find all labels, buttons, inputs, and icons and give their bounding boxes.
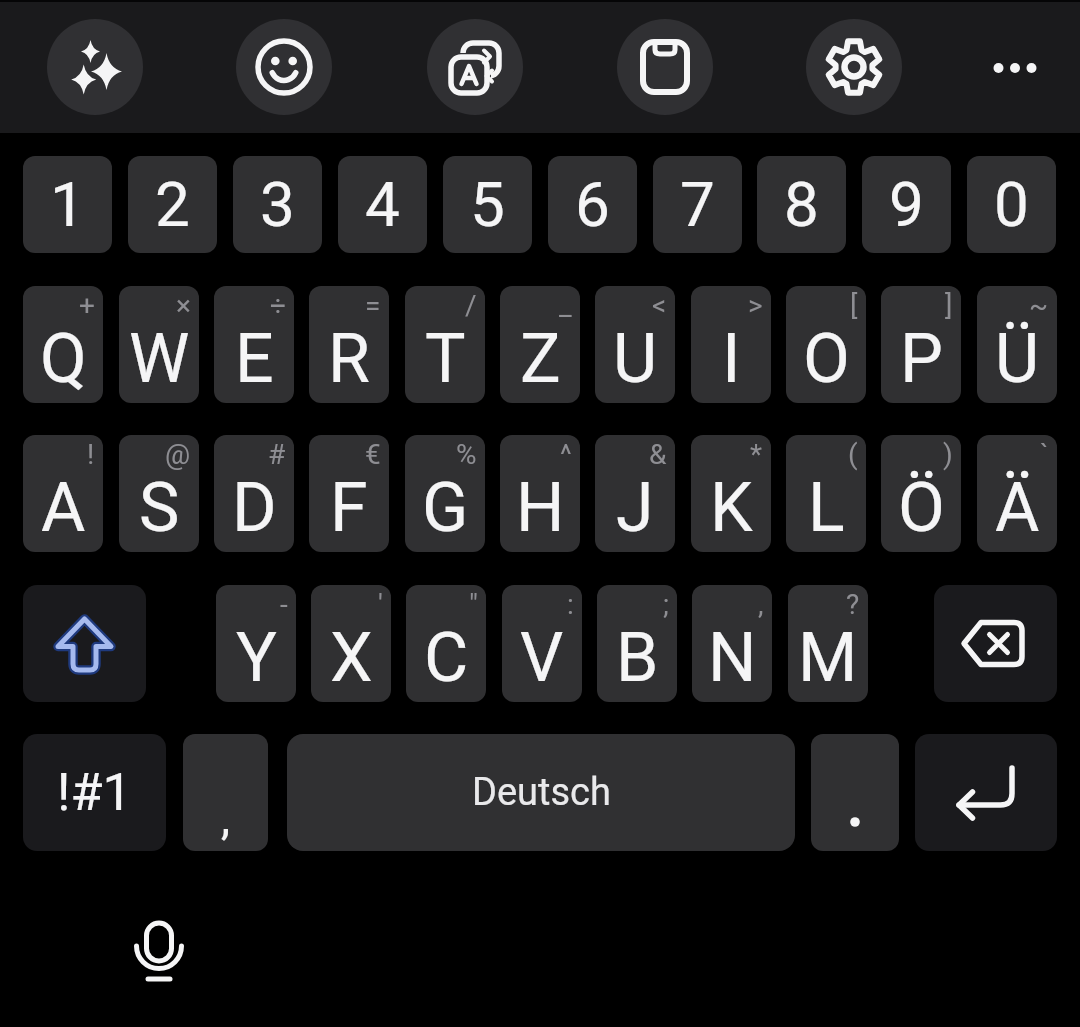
staticText: *	[750, 438, 763, 471]
staticText: ~	[1029, 289, 1049, 322]
button[interactable]	[236, 19, 332, 115]
button[interactable]: "	[406, 585, 486, 702]
button[interactable]: ?	[788, 585, 868, 702]
button[interactable]: [	[786, 286, 866, 403]
button[interactable]: 6	[548, 156, 637, 253]
staticText: :	[567, 588, 574, 621]
staticText: =	[365, 289, 381, 322]
staticText: +	[79, 289, 95, 322]
staticText: 1	[50, 168, 85, 241]
button[interactable]: 9	[862, 156, 951, 253]
staticText: U	[613, 319, 658, 399]
staticText: ×	[176, 289, 191, 322]
button[interactable]: ÷	[214, 286, 294, 403]
staticText: 2	[155, 168, 190, 241]
button[interactable]: €	[309, 435, 389, 552]
staticText: <	[652, 289, 667, 322]
button[interactable]	[811, 734, 899, 851]
button[interactable]	[617, 19, 713, 115]
button[interactable]: 8	[757, 156, 846, 253]
button[interactable]: :	[502, 585, 582, 702]
staticText: @	[165, 438, 191, 471]
staticText: B	[616, 618, 659, 698]
staticText: -	[280, 588, 288, 621]
staticText: S	[139, 468, 180, 548]
staticText: I	[722, 319, 741, 399]
staticText: K	[710, 468, 753, 548]
staticText: 7	[680, 168, 715, 241]
button[interactable]: 1	[23, 156, 112, 253]
staticText: %	[456, 438, 477, 471]
staticText: Ä	[995, 468, 1040, 548]
button[interactable]: /	[405, 286, 485, 403]
staticText: Z	[520, 319, 561, 399]
button[interactable]: '	[311, 585, 391, 702]
button[interactable]: +	[23, 286, 103, 403]
button[interactable]: ]	[881, 286, 961, 403]
staticText: !#1	[57, 762, 132, 823]
staticText: ,	[221, 791, 231, 845]
staticText: ]	[945, 289, 953, 322]
button[interactable]: 7	[653, 156, 742, 253]
button[interactable]	[47, 19, 143, 115]
staticText: ?	[846, 588, 860, 621]
staticText: X	[330, 618, 373, 698]
button[interactable]: 5	[443, 156, 532, 253]
staticText: V	[520, 618, 564, 698]
staticText: H	[516, 468, 565, 548]
button[interactable]: ,	[692, 585, 772, 702]
button[interactable]: !	[23, 435, 103, 552]
button[interactable]: ^	[500, 435, 580, 552]
staticText: >	[748, 289, 763, 322]
button[interactable]: ,	[183, 734, 268, 851]
button[interactable]: =	[309, 286, 389, 403]
staticText: F	[330, 468, 368, 548]
button[interactable]: (	[786, 435, 866, 552]
button[interactable]: ~	[977, 286, 1057, 403]
staticText: 5	[470, 168, 505, 241]
staticText: &	[649, 438, 667, 471]
button[interactable]: @	[119, 435, 199, 552]
button[interactable]: Deutsch	[287, 734, 795, 851]
staticText: Deutsch	[472, 770, 611, 815]
button[interactable]: #	[214, 435, 294, 552]
staticText: "	[469, 588, 478, 621]
button[interactable]: >	[691, 286, 771, 403]
button[interactable]	[915, 734, 1057, 851]
staticText: !	[87, 438, 95, 471]
staticText: M	[798, 618, 858, 698]
button[interactable]: _	[500, 286, 580, 403]
button[interactable]: %	[405, 435, 485, 552]
staticText: D	[232, 468, 277, 548]
button[interactable]: `	[977, 435, 1057, 552]
staticText: [	[850, 289, 858, 322]
button[interactable]: ;	[597, 585, 677, 702]
button[interactable]: *	[691, 435, 771, 552]
button[interactable]	[23, 585, 146, 702]
staticText: N	[708, 618, 757, 698]
button[interactable]: 3	[233, 156, 322, 253]
button[interactable]	[806, 19, 902, 115]
staticText: J	[616, 468, 654, 548]
staticText: Ü	[995, 319, 1040, 399]
button[interactable]: <	[595, 286, 675, 403]
staticText: 3	[260, 168, 295, 241]
button[interactable]: 4	[338, 156, 427, 253]
button[interactable]: ×	[119, 286, 199, 403]
button[interactable]	[427, 19, 523, 115]
button[interactable]: 2	[128, 156, 217, 253]
staticText: ^	[560, 438, 572, 471]
staticText: )	[943, 438, 953, 471]
button[interactable]: &	[595, 435, 675, 552]
staticText: 9	[889, 168, 924, 241]
button[interactable]: )	[881, 435, 961, 552]
staticText: /	[465, 289, 477, 322]
staticText: L	[808, 468, 845, 548]
button[interactable]: 0	[967, 156, 1056, 253]
button[interactable]	[934, 585, 1057, 702]
button[interactable]	[975, 38, 1055, 98]
staticText: _	[559, 289, 572, 322]
button[interactable]: -	[216, 585, 296, 702]
button[interactable]	[115, 905, 205, 1000]
button[interactable]: !#1	[23, 734, 166, 851]
